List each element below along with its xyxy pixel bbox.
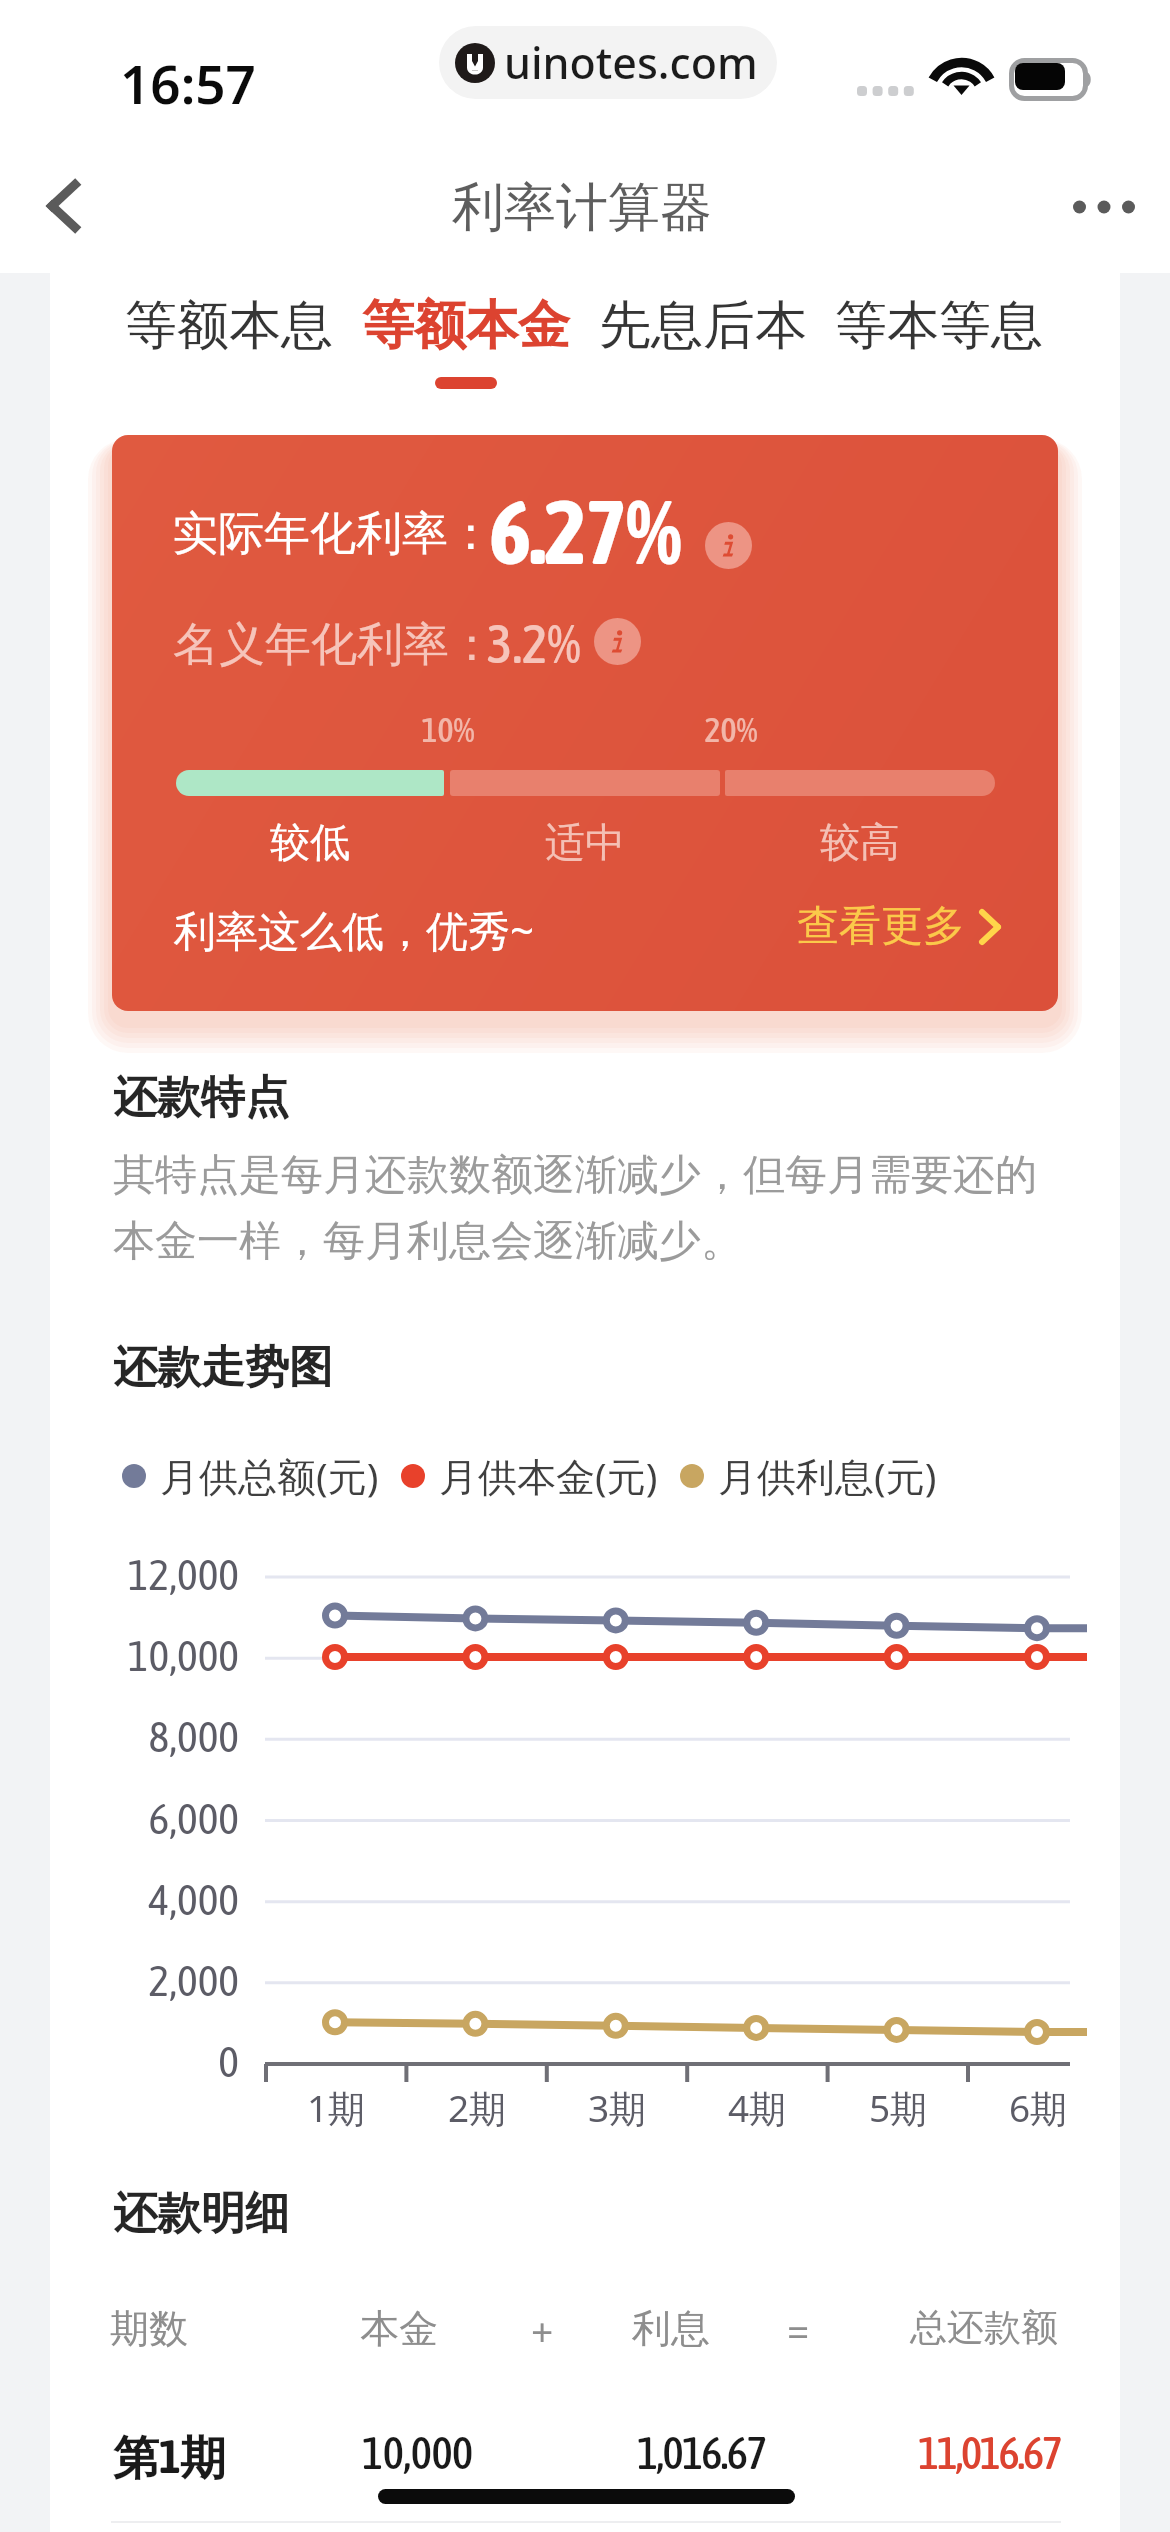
staticText: 较低: [230, 817, 390, 867]
staticText: 还款走势图: [113, 1340, 333, 1395]
button[interactable]: Info: [705, 522, 752, 569]
staticText: 6,000: [58, 1793, 239, 1843]
button[interactable]: [50, 2415, 1120, 2501]
staticText: 第: [113, 2430, 159, 2488]
staticText: 月供利息(元): [718, 1449, 937, 1502]
staticText: 还款特点: [113, 1070, 289, 1125]
staticText: 利率这么低，优秀~: [174, 901, 535, 958]
staticText: 还款明细: [113, 2186, 289, 2241]
staticText: 实际年化利率：: [172, 505, 494, 563]
staticText: 16:57: [120, 47, 256, 119]
staticText: 20%: [681, 710, 781, 749]
button[interactable]: More options: [1056, 159, 1152, 255]
staticText: 其特点是每月还款数额逐渐减少，但每月需要还的本金一样，每月利息会逐渐减少。: [113, 1149, 1053, 1268]
button[interactable]: 等本等息: [824, 293, 1054, 393]
staticText: 10%: [398, 710, 498, 749]
staticText: 总还款额: [900, 2304, 1058, 2351]
staticText: 4,000: [58, 1874, 239, 1924]
staticText: uinotes.com: [504, 33, 758, 92]
staticText: 6期: [968, 2082, 1108, 2133]
staticText: 月供本金(元): [439, 1449, 658, 1502]
staticText: 名义年化利率：: [173, 616, 495, 674]
staticText: 期数: [110, 2304, 188, 2353]
staticText: 4期: [687, 2082, 827, 2133]
staticText: 8,000: [58, 1711, 239, 1761]
staticText: 0: [58, 2036, 239, 2086]
button[interactable]: 等额本金: [351, 293, 581, 393]
button[interactable]: 等额本息: [114, 293, 344, 393]
staticText: 2期: [407, 2082, 547, 2133]
staticText: 10,000: [58, 1630, 239, 1680]
staticText: 2,000: [58, 1955, 239, 2005]
staticText: 11,016.67: [918, 2427, 1061, 2479]
button[interactable]: Back: [16, 158, 112, 254]
staticText: 3.2%: [487, 613, 581, 675]
button[interactable]: 查看更多: [797, 900, 1001, 953]
staticText: 等额本息: [125, 293, 333, 359]
staticText: 较高: [780, 817, 940, 867]
staticText: 查看更多: [797, 900, 965, 953]
staticText: 月供总额(元): [160, 1449, 379, 1502]
staticText: 等额本金: [362, 293, 570, 359]
staticText: 利息: [632, 2304, 710, 2353]
staticText: 1期: [266, 2082, 406, 2133]
staticText: 先息后本: [599, 293, 807, 359]
staticText: 12,000: [58, 1549, 239, 1599]
button[interactable]: 先息后本: [588, 293, 818, 393]
staticText: +: [531, 2304, 554, 2357]
staticText: =: [787, 2304, 810, 2357]
staticText: 1: [159, 2430, 181, 2483]
staticText: 1,016.67: [637, 2427, 766, 2479]
staticText: 3期: [547, 2082, 687, 2133]
button[interactable]: Info: [594, 618, 641, 665]
staticText: 本金: [360, 2304, 438, 2353]
staticText: 期: [180, 2430, 226, 2488]
staticText: 5期: [828, 2082, 968, 2133]
staticText: 10,000: [362, 2427, 473, 2479]
staticText: 利率计算器: [452, 175, 712, 241]
staticText: 6.27%: [489, 480, 681, 583]
staticText: 等本等息: [835, 293, 1043, 359]
staticText: 适中: [505, 817, 665, 867]
